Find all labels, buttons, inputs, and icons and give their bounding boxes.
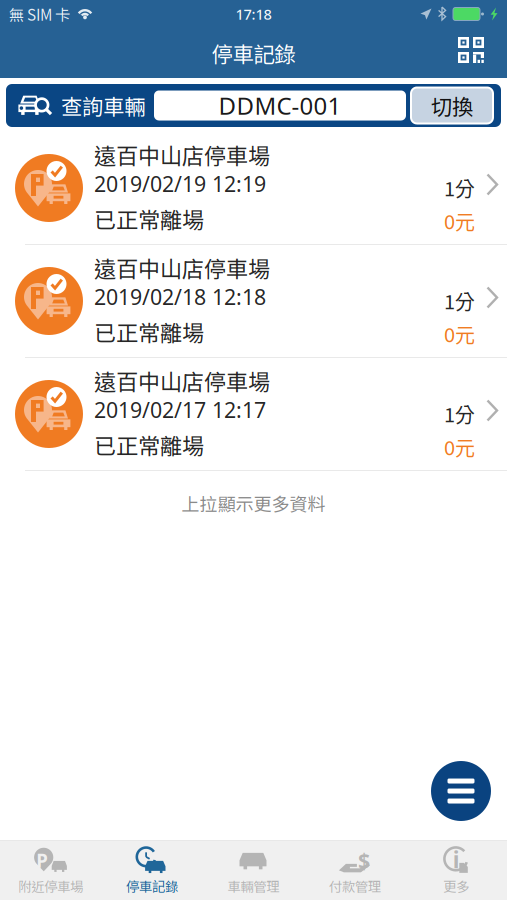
staticText: 付款管理 [329, 876, 381, 896]
staticText: 上拉顯示更多資料 [181, 490, 325, 516]
button[interactable]: 遠百中山店停車場 [0, 132, 507, 245]
staticText: DDMC-001 [218, 90, 341, 121]
button[interactable]: $ [304, 841, 406, 900]
staticText: 遠百中山店停車場 [94, 138, 270, 170]
staticText: 附近停車場 [18, 876, 83, 896]
button[interactable]: 遠百中山店停車場 [0, 358, 507, 471]
button[interactable]: DDMC-001 [154, 90, 406, 120]
button[interactable]: P [0, 841, 101, 900]
staticText: 停車記錄 [126, 876, 178, 896]
staticText: 查詢車輛 [61, 90, 145, 121]
staticText: 遠百中山店停車場 [94, 251, 270, 283]
button[interactable]: 選單 [431, 761, 491, 821]
button[interactable]: 車輛管理 [203, 841, 304, 900]
button[interactable]: 掃描 QR Code [448, 27, 494, 73]
staticText: i [453, 844, 460, 874]
staticText: 已正常離場 [94, 428, 204, 460]
button[interactable]: i [406, 841, 507, 900]
button[interactable]: 切換 [411, 87, 493, 123]
staticText: 0元 [444, 432, 475, 461]
button[interactable]: 遠百中山店停車場 [0, 245, 507, 358]
staticText: 1分 [444, 399, 475, 428]
staticText: 0元 [444, 319, 475, 348]
staticText: 停車記錄 [211, 38, 295, 68]
staticText: 0元 [444, 206, 475, 235]
staticText: P [36, 848, 48, 873]
staticText: 更多 [443, 876, 469, 896]
staticText: 2019/02/18 12:18 [94, 282, 266, 311]
staticText: 2019/02/17 12:17 [94, 395, 266, 424]
button[interactable]: 停車記錄 [101, 841, 203, 900]
staticText: 切換 [431, 90, 473, 121]
staticText: 遠百中山店停車場 [94, 364, 270, 396]
staticText: 已正常離場 [94, 202, 204, 234]
staticText: 1分 [444, 173, 475, 202]
staticText: $ [358, 846, 370, 875]
staticText: 1分 [444, 286, 475, 315]
staticText: 車輛管理 [227, 876, 279, 896]
staticText: 17:18 [235, 4, 271, 24]
staticText: 2019/02/19 12:19 [94, 169, 266, 198]
staticText: 已正常離場 [94, 315, 204, 347]
staticText: 無 SIM 卡 [9, 3, 70, 25]
